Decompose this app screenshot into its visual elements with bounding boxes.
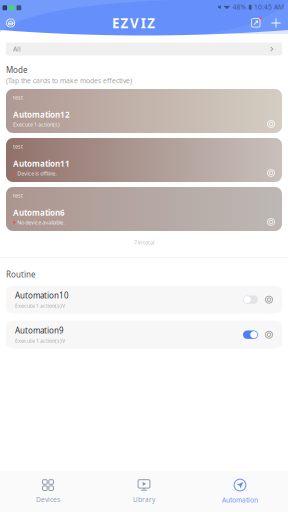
staticText: 10:45 AM (254, 3, 284, 11)
staticText: 48% (232, 3, 246, 11)
staticText: Automation12 (13, 109, 70, 120)
button[interactable]: Scan QR code (247, 14, 266, 32)
button[interactable]: Devices (0, 471, 96, 512)
staticText: Automation (222, 496, 258, 504)
staticText: Devices (36, 495, 60, 504)
staticText: All (13, 45, 21, 53)
button[interactable]: Add device (266, 14, 288, 32)
staticText: test (13, 94, 23, 101)
staticText: Execute 1 action(s)V (15, 302, 65, 309)
staticText: Device is offline. (17, 170, 56, 177)
staticText: Execute 1 action(s) (13, 121, 60, 128)
staticText: Automation10 (15, 290, 69, 301)
staticText: test (13, 192, 23, 199)
staticText: Library (133, 495, 155, 504)
staticText: Automation9 (15, 325, 64, 336)
staticText: No device available. (17, 219, 64, 226)
button[interactable]: Automation10 (6, 286, 282, 314)
staticText: EZVIZ (112, 14, 155, 32)
button[interactable]: test (6, 89, 282, 133)
button[interactable]: Automation (192, 471, 288, 512)
staticText: Routine (6, 269, 36, 280)
button[interactable]: Automation9 (6, 321, 282, 349)
button[interactable]: Support (0, 14, 20, 32)
button[interactable]: test (6, 138, 282, 182)
button[interactable]: Library (96, 471, 192, 512)
button[interactable]: All (6, 42, 282, 55)
staticText: Execute 1 action(s)V (15, 337, 65, 344)
staticText: Mode (6, 64, 28, 75)
staticText: Automation6 (13, 207, 65, 218)
staticText: test (13, 143, 23, 150)
staticText: Automation11 (13, 158, 70, 169)
staticText: (Tap the cards to make modes effective) (6, 76, 132, 85)
staticText: 7 in total (134, 239, 154, 246)
button[interactable]: test (6, 187, 282, 231)
